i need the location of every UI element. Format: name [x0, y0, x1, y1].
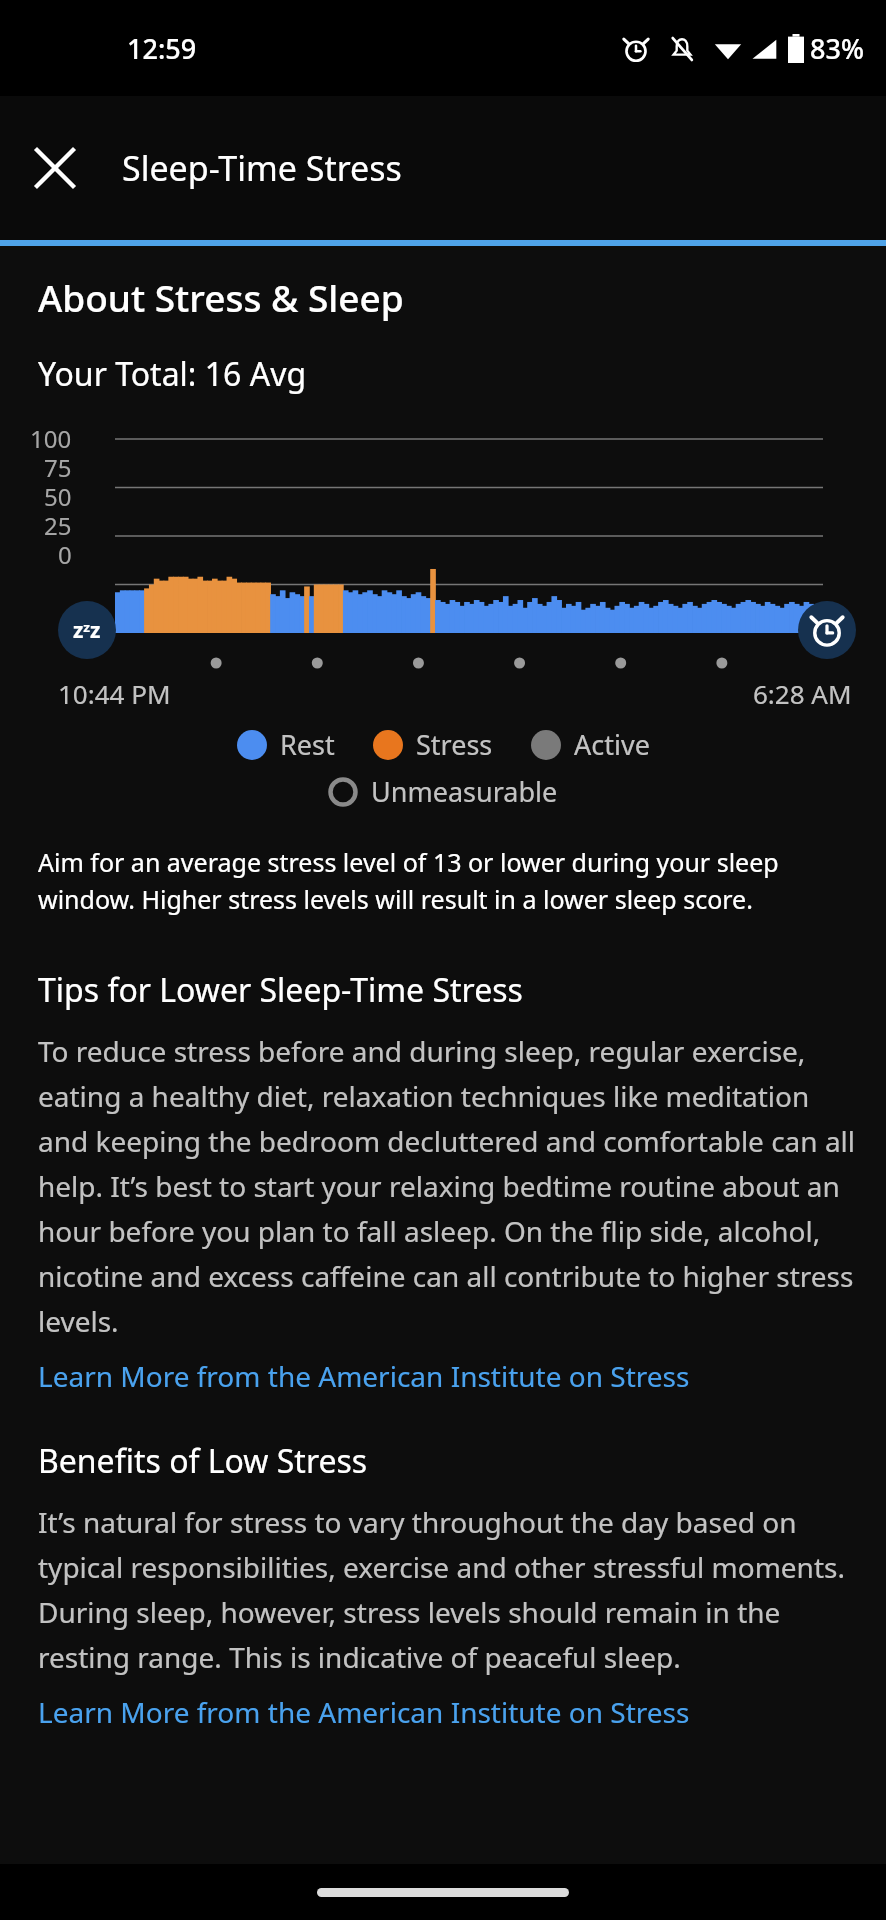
- staticText: Active: [574, 726, 650, 763]
- button[interactable]: Learn More from the American Institute o…: [0, 1357, 886, 1395]
- staticText: 50: [44, 480, 72, 513]
- staticText: 10:44 PM: [58, 676, 171, 711]
- staticText: 25: [44, 509, 72, 542]
- staticText: 6:28 AM: [753, 676, 852, 711]
- staticText: It’s natural for stress to vary througho…: [38, 1503, 864, 1677]
- staticText: 83%: [810, 30, 864, 67]
- button[interactable]: Sleep start: [58, 601, 116, 659]
- staticText: Learn More from the American Institute o…: [38, 1357, 690, 1395]
- button[interactable]: Wake time: [798, 601, 856, 659]
- staticText: Unmeasurable: [371, 773, 558, 810]
- staticText: 75: [44, 451, 72, 484]
- staticText: Learn More from the American Institute o…: [38, 1693, 690, 1731]
- staticText: Sleep-Time Stress: [122, 145, 402, 191]
- staticText: To reduce stress before and during sleep…: [38, 1032, 858, 1341]
- button[interactable]: Unmeasurable: [326, 768, 560, 815]
- staticText: 0: [58, 538, 72, 571]
- button[interactable]: Active: [529, 721, 652, 768]
- button[interactable]: Stress: [371, 721, 495, 768]
- staticText: Tips for Lower Sleep-Time Stress: [38, 968, 523, 1012]
- staticText: Benefits of Low Stress: [38, 1439, 368, 1483]
- staticText: 12:59: [127, 30, 197, 67]
- staticText: Aim for an average stress level of 13 or…: [38, 845, 842, 916]
- button[interactable]: Close: [18, 131, 92, 205]
- button[interactable]: Learn More from the American Institute o…: [0, 1693, 886, 1731]
- staticText: About Stress & Sleep: [38, 272, 404, 322]
- staticText: Your Total: 16 Avg: [38, 352, 307, 396]
- button[interactable]: Rest: [235, 721, 337, 768]
- staticText: zᶻz: [73, 616, 101, 645]
- staticText: Rest: [280, 726, 335, 763]
- staticText: Stress: [416, 726, 493, 763]
- staticText: 100: [30, 422, 72, 455]
